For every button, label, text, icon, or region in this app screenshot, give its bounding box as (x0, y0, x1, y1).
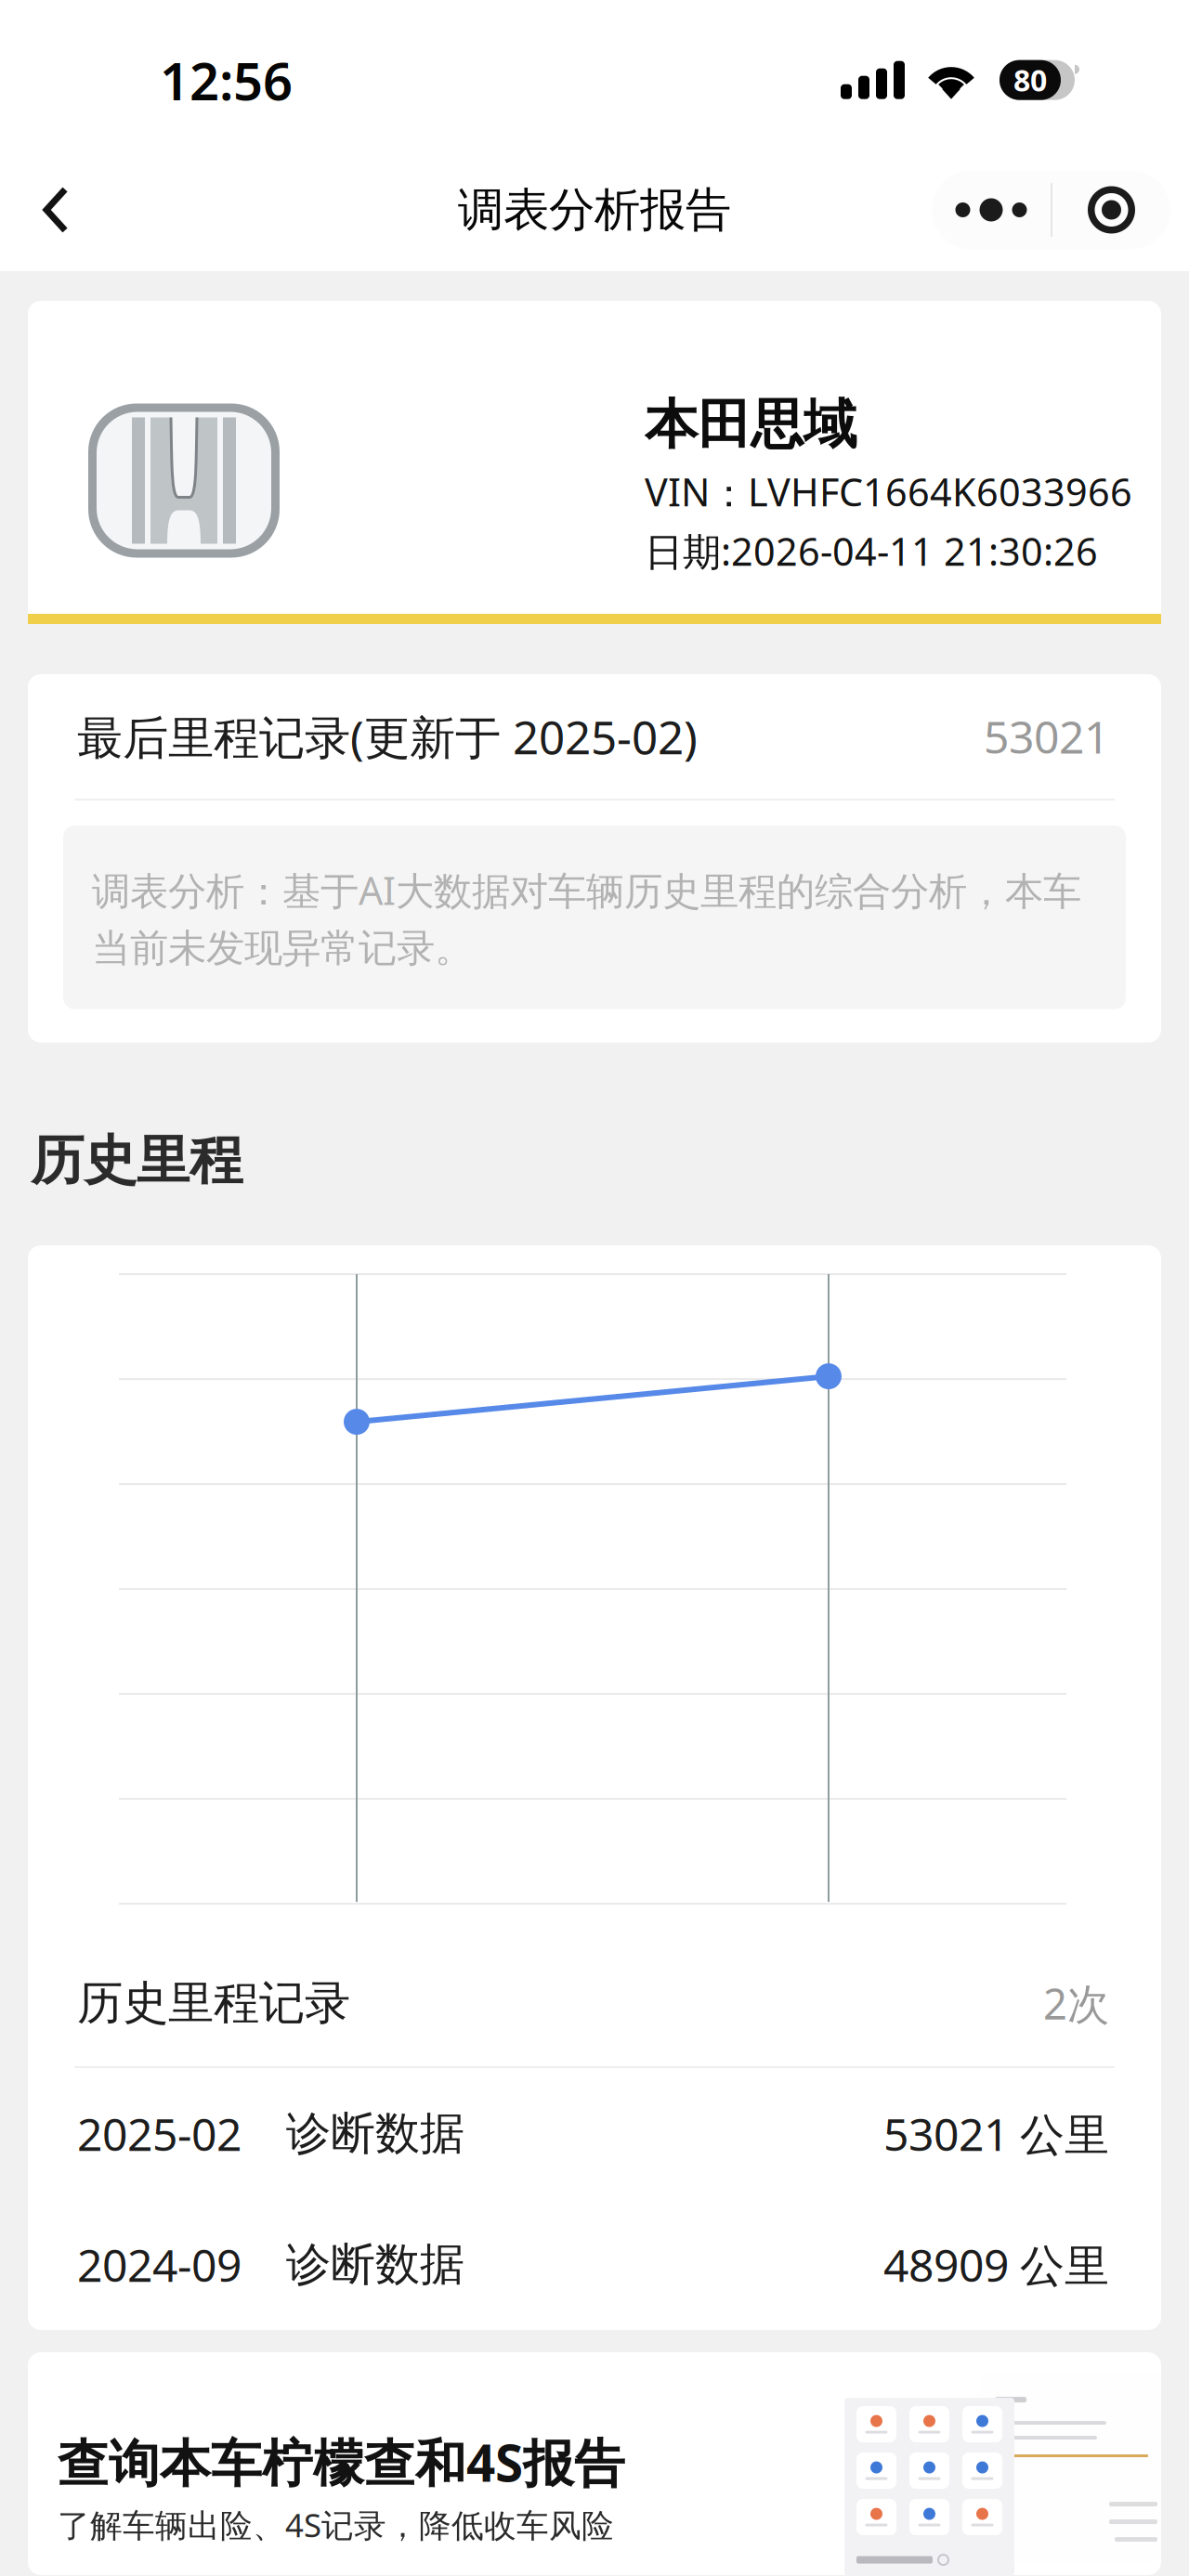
staticText: 本田思域 (645, 392, 856, 458)
staticText: 12:56 (160, 46, 293, 115)
button[interactable]: 查询本车柠檬查和4S报告 (28, 2352, 1161, 2575)
staticText: 80 (1013, 60, 1047, 100)
staticText: 诊断数据 (286, 2237, 464, 2292)
staticText: 了解车辆出险、4S记录，降低收车风险 (58, 2503, 614, 2546)
staticText: 48909 公里 (883, 2235, 1109, 2294)
staticText: 2024-09 (77, 2235, 242, 2294)
staticText: 53021 公里 (883, 2104, 1109, 2163)
staticText: 诊断数据 (286, 2106, 464, 2161)
staticText: 2025-02 (77, 2104, 242, 2163)
staticText: 2次 (1043, 1975, 1109, 2031)
staticText: 历史里程 (31, 1128, 242, 1193)
staticText: VIN：LVHFC1664K6033966 (645, 466, 1132, 517)
staticText: 当前未发现异常记录。 (92, 925, 473, 972)
button[interactable]: Close mini program (1052, 170, 1170, 249)
button[interactable]: Back (0, 163, 98, 256)
staticText: 调表分析：基于AI大数据对车辆历史里程的综合分析，本车 (92, 865, 1081, 916)
staticText: 最后里程记录(更新于 2025-02) (77, 706, 698, 767)
staticText: 53021 (984, 707, 1109, 766)
button[interactable]: More options (932, 170, 1051, 249)
staticText: 日期:2026-04-11 21:30:26 (645, 525, 1098, 576)
staticText: 调表分析报告 (458, 182, 731, 238)
staticText: 查询本车柠檬查和4S报告 (58, 2428, 625, 2496)
staticText: 历史里程记录 (77, 1975, 350, 2031)
